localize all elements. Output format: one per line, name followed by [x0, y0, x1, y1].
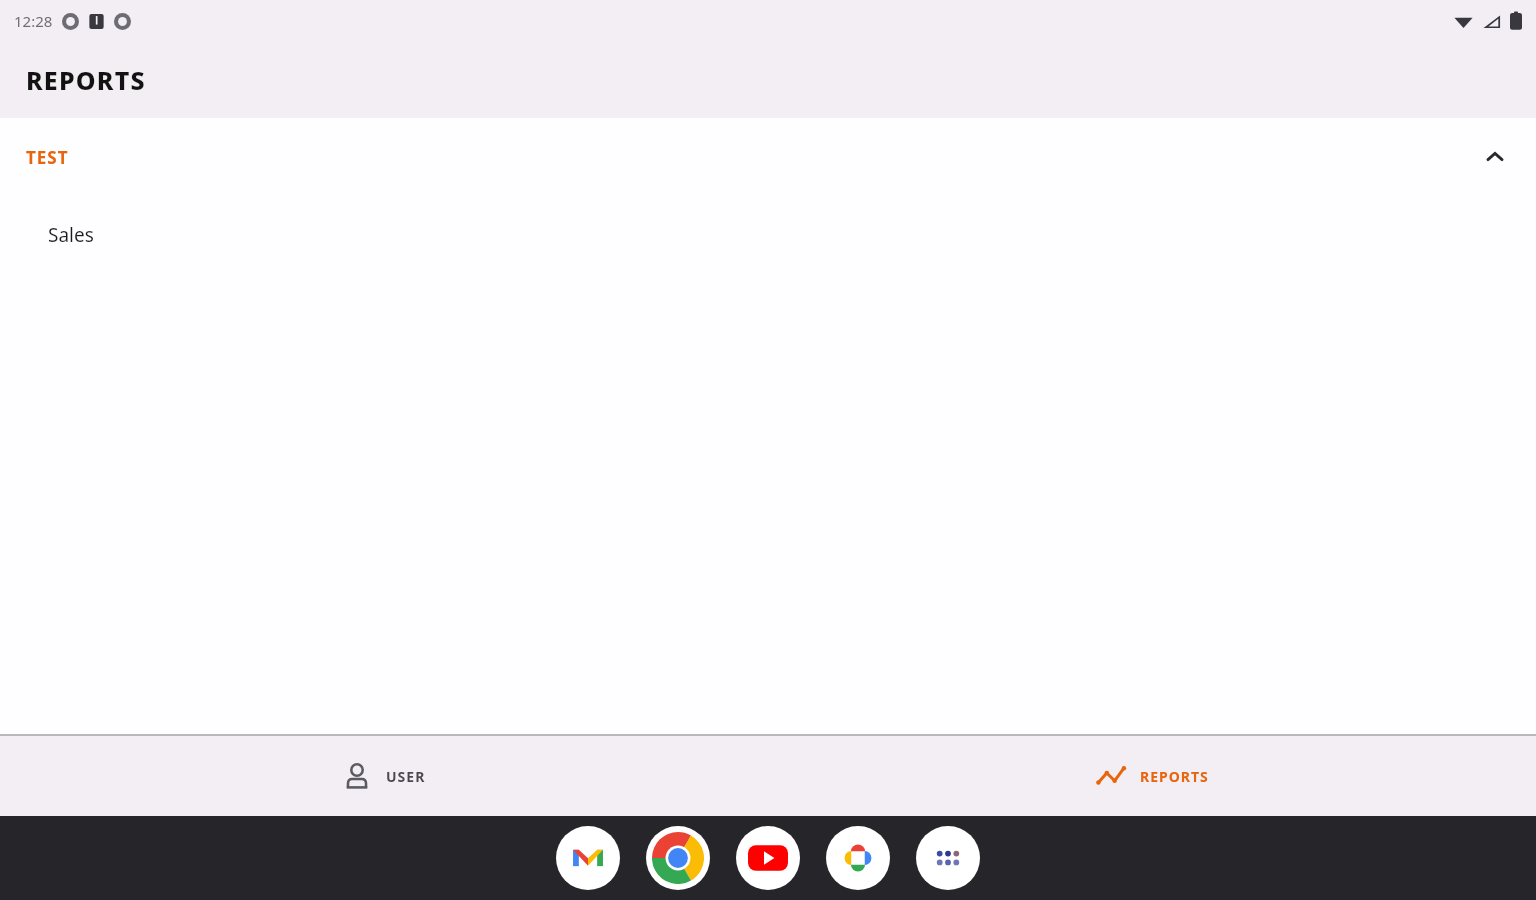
staticText: 12:28	[14, 11, 53, 31]
button[interactable]: REPORTS	[768, 736, 1536, 816]
button[interactable]: Chrome	[646, 826, 710, 890]
staticText: REPORTS	[26, 63, 146, 97]
button[interactable]: YouTube	[736, 826, 800, 890]
button[interactable]: TEST	[0, 118, 1536, 196]
button[interactable]: Sales	[0, 196, 1536, 274]
staticText: REPORTS	[1140, 767, 1209, 786]
button[interactable]: Photos	[826, 826, 890, 890]
button[interactable]: USER	[0, 736, 768, 816]
other: Collapse TEST	[1480, 142, 1510, 172]
button[interactable]: All apps	[916, 826, 980, 890]
staticText: TEST	[26, 146, 69, 169]
button[interactable]: Gmail	[556, 826, 620, 890]
staticText: USER	[386, 767, 426, 786]
staticText: Sales	[48, 222, 94, 248]
